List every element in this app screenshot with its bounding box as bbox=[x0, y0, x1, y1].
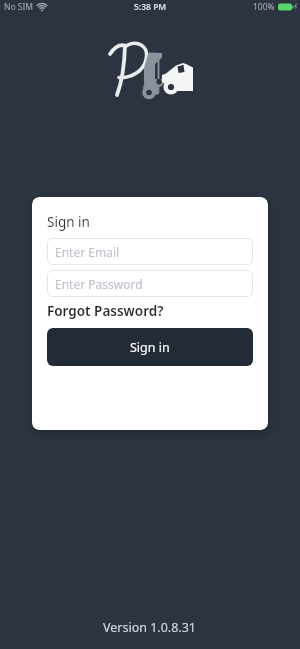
staticText: No SIM bbox=[4, 1, 34, 13]
button[interactable]: Enter Email bbox=[47, 238, 253, 265]
staticText: Forgot Password? bbox=[47, 302, 164, 320]
button[interactable]: Sign in bbox=[47, 328, 253, 366]
staticText: Sign in bbox=[47, 213, 90, 231]
staticText: 100% bbox=[253, 1, 275, 13]
staticText: Enter Email bbox=[55, 244, 120, 260]
staticText: Sign in bbox=[130, 339, 170, 356]
staticText: Version 1.0.8.31 bbox=[103, 619, 197, 636]
button[interactable]: Enter Password bbox=[47, 270, 253, 297]
staticText: 5:38 PM bbox=[134, 1, 167, 13]
button[interactable]: Forgot Password? bbox=[47, 302, 164, 320]
staticText: Enter Password bbox=[55, 276, 143, 292]
